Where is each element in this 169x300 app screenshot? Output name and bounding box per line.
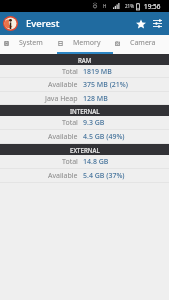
staticText: 9.3 GB [83, 118, 105, 128]
staticText: 375 MB (21%) [83, 80, 128, 90]
staticText: Memory [73, 38, 101, 48]
button[interactable]: Java Heap [0, 92, 169, 105]
staticText: 5.4 GB (37%) [83, 171, 125, 181]
button[interactable]: Total [0, 65, 169, 78]
staticText: RAM [78, 56, 92, 64]
button[interactable]: Total [0, 155, 169, 169]
staticText: Camera [130, 38, 156, 48]
staticText: Available [48, 171, 78, 181]
staticText: Total [62, 118, 78, 128]
staticText: INTERNAL [70, 107, 100, 115]
button[interactable]: Available [0, 78, 169, 92]
staticText: 21% [125, 3, 134, 9]
button[interactable]: Favorite [132, 12, 149, 35]
button[interactable]: Available [0, 169, 169, 183]
button[interactable]: Total [0, 116, 169, 130]
staticText: Available [48, 132, 78, 142]
staticText: Java Heap [45, 94, 78, 104]
button[interactable]: Memory [57, 35, 113, 51]
staticText: 19:56 [144, 2, 161, 11]
staticText: 128 MB [83, 94, 108, 104]
staticText: Available [48, 80, 78, 90]
staticText: Everest [26, 17, 60, 30]
button[interactable]: System [0, 35, 57, 51]
staticText: 1819 MB [83, 67, 112, 77]
staticText: 14.8 GB [83, 157, 109, 167]
staticText: Total [62, 67, 78, 77]
staticText: System [19, 38, 43, 48]
staticText: 4.5 GB (49%) [83, 132, 125, 142]
button[interactable]: Camera [113, 35, 169, 51]
button[interactable]: Settings [149, 12, 166, 35]
button[interactable]: Available [0, 130, 169, 144]
staticText: H [103, 3, 107, 9]
staticText: Total [62, 157, 78, 167]
staticText: EXTERNAL [70, 146, 100, 154]
